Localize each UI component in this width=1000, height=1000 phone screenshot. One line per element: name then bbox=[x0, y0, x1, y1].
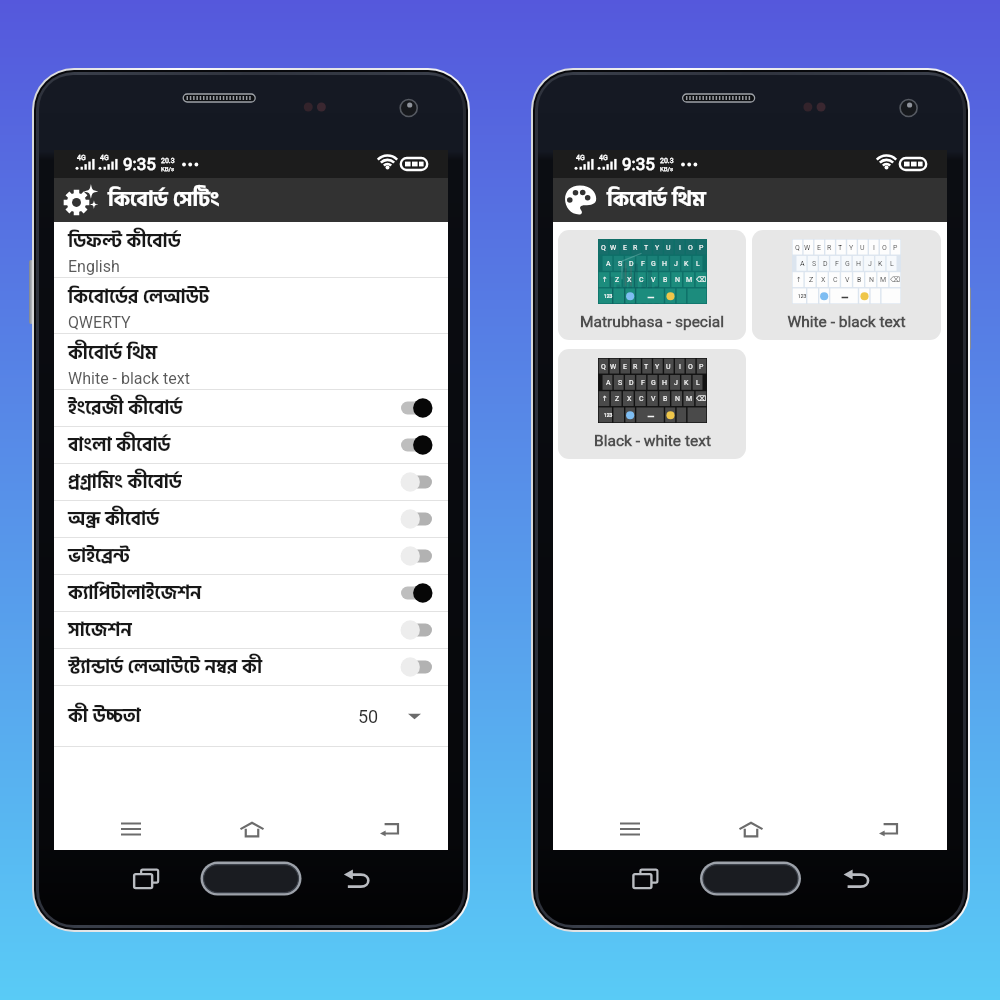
staticText: কিবোর্ড থিম bbox=[607, 183, 706, 217]
staticText: ↑ bbox=[796, 276, 802, 284]
button[interactable]: Toggle bbox=[390, 580, 434, 606]
staticText: সাজেশন bbox=[68, 615, 390, 646]
staticText: Z bbox=[615, 276, 620, 284]
staticText: ⌫ bbox=[696, 276, 706, 284]
staticText: F bbox=[835, 260, 839, 268]
staticText: 4G bbox=[576, 154, 585, 162]
staticText: N bbox=[675, 276, 680, 284]
button[interactable]: Home bbox=[711, 808, 790, 850]
button[interactable]: অন্ধ্র কীবোর্ড bbox=[54, 501, 448, 537]
staticText: E bbox=[817, 244, 821, 252]
staticText: ⌫ bbox=[696, 395, 706, 403]
staticText: K bbox=[684, 260, 689, 268]
staticText: 20.3 bbox=[161, 157, 175, 165]
staticText: E bbox=[623, 244, 627, 252]
button[interactable]: Q bbox=[558, 230, 746, 340]
button[interactable]: Back bbox=[829, 808, 947, 850]
button[interactable]: ডিফল্ট কীবোর্ড bbox=[54, 222, 448, 277]
staticText: Y bbox=[849, 244, 854, 252]
button[interactable]: সাজেশন bbox=[54, 612, 448, 648]
staticText: KB/s bbox=[161, 165, 175, 172]
staticText: ↑ bbox=[602, 395, 608, 403]
staticText: J bbox=[868, 260, 872, 268]
button[interactable]: প্রগ্রামিং কীবোর্ড bbox=[54, 464, 448, 500]
staticText: 123 bbox=[604, 412, 613, 418]
staticText: A bbox=[606, 260, 611, 268]
staticText: B bbox=[663, 276, 668, 284]
staticText: কিবোর্ড সেটিং bbox=[108, 183, 220, 217]
staticText: M bbox=[686, 395, 693, 403]
staticText: N bbox=[675, 395, 680, 403]
button[interactable]: কিবোর্ডের লেআউট bbox=[54, 278, 448, 333]
staticText: R bbox=[633, 244, 638, 252]
staticText: X bbox=[627, 395, 632, 403]
staticText: QWERTY bbox=[68, 313, 131, 332]
staticText: L bbox=[696, 260, 700, 268]
button[interactable]: Toggle bbox=[390, 469, 434, 495]
staticText: V bbox=[651, 276, 656, 284]
staticText: U bbox=[860, 244, 865, 252]
staticText: A bbox=[800, 260, 805, 268]
staticText: P bbox=[699, 244, 704, 252]
button[interactable]: Menu bbox=[54, 808, 208, 850]
staticText: T bbox=[838, 244, 843, 252]
button[interactable]: Menu bbox=[553, 808, 707, 850]
staticText: V bbox=[651, 395, 656, 403]
staticText: বাংলা কীবোর্ড bbox=[68, 430, 390, 461]
button[interactable]: Toggle bbox=[390, 617, 434, 643]
staticText: কিবোর্ডের লেআউট bbox=[68, 282, 210, 313]
staticText: কী উচ্চতা bbox=[68, 701, 358, 732]
staticText: প্রগ্রামিং কীবোর্ড bbox=[68, 467, 390, 498]
button[interactable]: Toggle bbox=[390, 506, 434, 532]
button[interactable]: কী উচ্চতা bbox=[54, 686, 448, 746]
staticText: White - black text bbox=[68, 369, 190, 388]
button[interactable]: Toggle bbox=[390, 543, 434, 569]
staticText: J bbox=[674, 260, 678, 268]
button[interactable]: স্ট্যান্ডার্ড লেআউটে নম্বর কী bbox=[54, 649, 448, 685]
staticText: K bbox=[684, 379, 689, 387]
staticText: D bbox=[629, 379, 634, 387]
staticText: L bbox=[696, 379, 700, 387]
staticText: 50 bbox=[358, 706, 379, 727]
staticText: Y bbox=[655, 363, 660, 371]
staticText: P bbox=[699, 363, 704, 371]
staticText: U bbox=[666, 363, 671, 371]
button[interactable]: বাংলা কীবোর্ড bbox=[54, 427, 448, 463]
staticText: T bbox=[644, 244, 649, 252]
button[interactable]: Toggle bbox=[390, 395, 434, 421]
staticText: 4G bbox=[100, 154, 109, 162]
staticText: 9:35 bbox=[123, 154, 156, 174]
button[interactable]: ইংরেজী কীবোর্ড bbox=[54, 390, 448, 426]
staticText: ডিফল্ট কীবোর্ড bbox=[68, 226, 181, 257]
staticText: I bbox=[873, 244, 875, 252]
staticText: স্ট্যান্ডার্ড লেআউটে নম্বর কী bbox=[68, 652, 390, 683]
button[interactable]: কীবোর্ড থিম bbox=[54, 334, 448, 389]
button[interactable]: ভাইব্রেন্ট bbox=[54, 538, 448, 574]
staticText: D bbox=[823, 260, 828, 268]
button[interactable]: Toggle bbox=[390, 654, 434, 680]
staticText: T bbox=[644, 363, 649, 371]
staticText: H bbox=[662, 260, 667, 268]
staticText: English bbox=[68, 257, 120, 276]
staticText: Q bbox=[601, 363, 606, 371]
staticText: 4G bbox=[77, 154, 86, 162]
staticText: Matrubhasa - special bbox=[580, 313, 724, 331]
staticText: K bbox=[878, 260, 883, 268]
staticText: W bbox=[610, 363, 617, 371]
staticText: 9:35 bbox=[622, 154, 655, 174]
staticText: R bbox=[633, 363, 638, 371]
staticText: G bbox=[845, 260, 850, 268]
button[interactable]: ক্যাপিটালাইজেশন bbox=[54, 575, 448, 611]
button[interactable]: Q bbox=[752, 230, 941, 340]
staticText: I bbox=[679, 244, 681, 252]
staticText: C bbox=[833, 276, 838, 284]
button[interactable]: Toggle bbox=[390, 432, 434, 458]
button[interactable]: Home bbox=[212, 808, 291, 850]
staticText: B bbox=[857, 276, 862, 284]
staticText: L bbox=[890, 260, 894, 268]
staticText: C bbox=[639, 395, 644, 403]
staticText: J bbox=[674, 379, 678, 387]
staticText: D bbox=[629, 260, 634, 268]
button[interactable]: Back bbox=[330, 808, 448, 850]
button[interactable]: Q bbox=[558, 349, 746, 459]
